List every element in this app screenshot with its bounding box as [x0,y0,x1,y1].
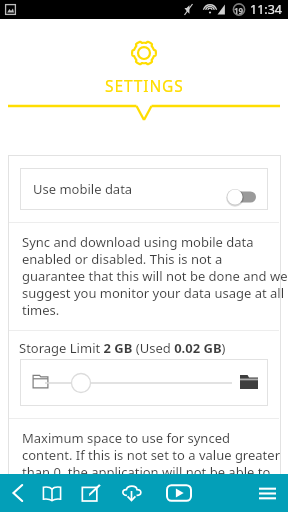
button[interactable]: Back [0,474,36,512]
button[interactable]: Edit [71,474,113,512]
button[interactable]: Play [157,474,201,512]
staticText: Sync and download using mobile data enab… [22,233,276,319]
button[interactable]: Storage limit slider [20,359,268,406]
staticText: Maximum space to use for synced content.… [22,429,278,498]
staticText: Use mobile data [33,180,133,198]
button[interactable]: Use mobile data [20,168,268,210]
staticText: 19 [234,5,244,16]
staticText: 11:34 [250,1,282,18]
staticText: SETTINGS [105,75,184,96]
button[interactable]: Download [110,474,152,512]
button[interactable]: Menu [248,474,286,512]
button[interactable]: Use mobile data toggle [226,177,259,201]
staticText: Storage Limit 2 GB (Used 0.02 GB) [19,339,226,357]
button[interactable]: Library [31,474,73,512]
